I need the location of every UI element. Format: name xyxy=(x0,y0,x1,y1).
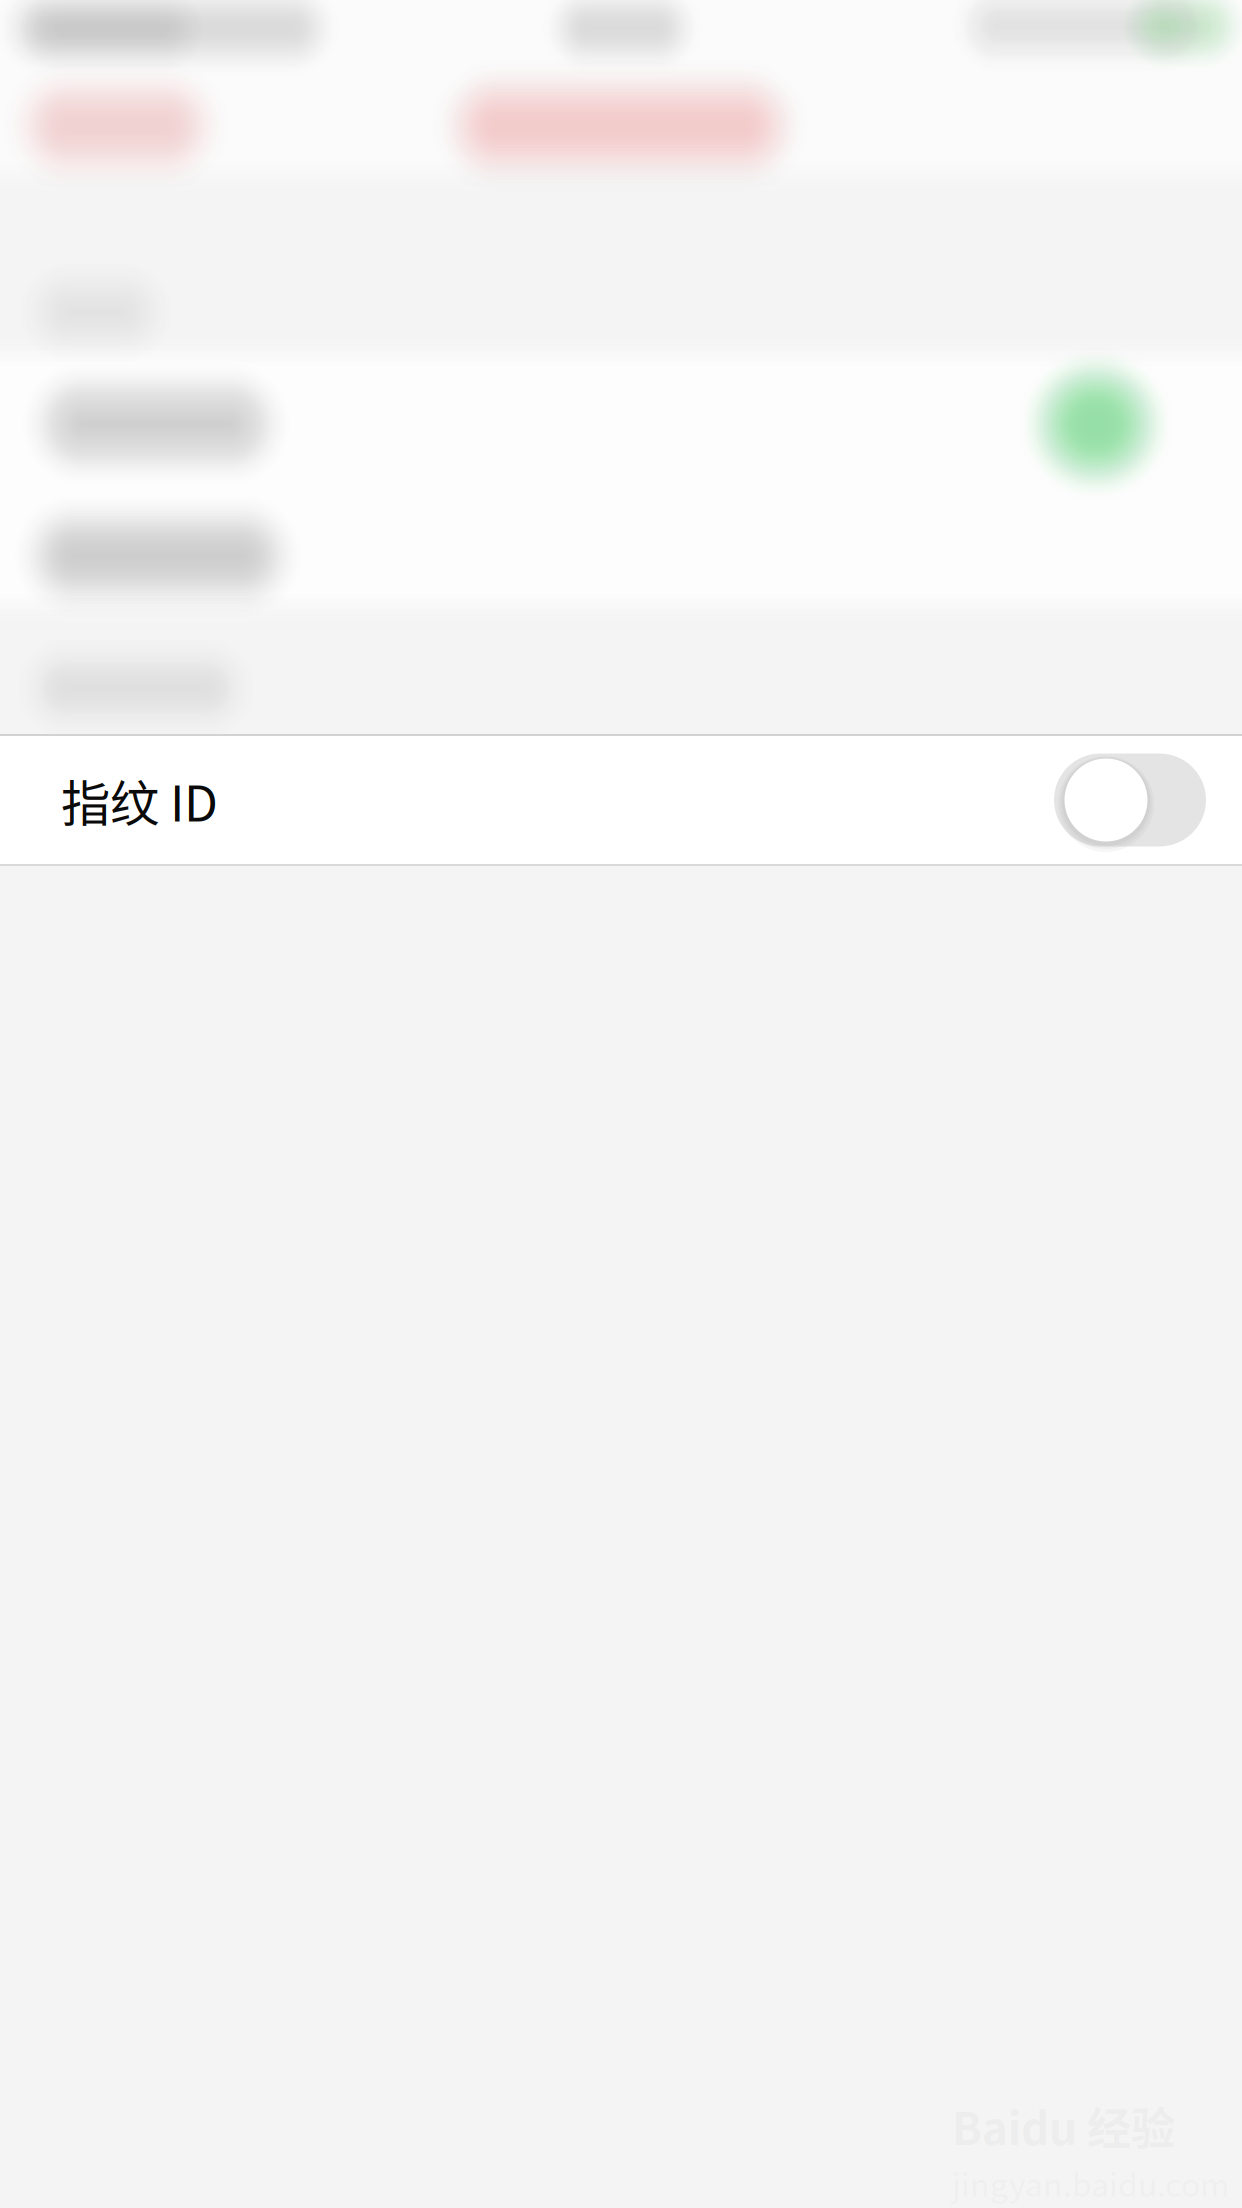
button[interactable]: 指纹 ID xyxy=(0,736,1242,864)
staticText: 指纹 ID xyxy=(61,764,218,836)
